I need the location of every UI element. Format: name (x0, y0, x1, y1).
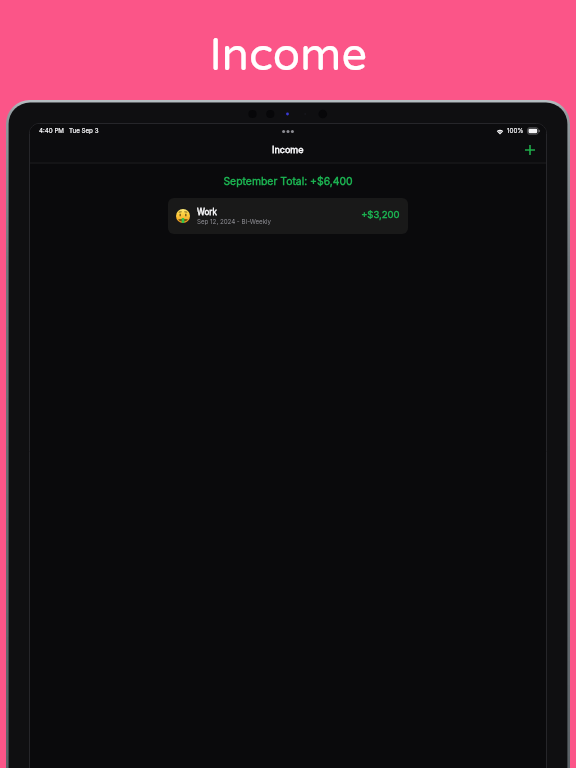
staticText: 100% (507, 127, 524, 135)
staticText: September Total: +$6,400 (30, 175, 546, 188)
button[interactable]: Work (168, 198, 408, 234)
staticText: Work (197, 207, 217, 217)
button[interactable]: Add income (518, 142, 542, 158)
staticText: Tue Sep 3 (69, 127, 99, 135)
staticText: Income (0, 29, 576, 83)
staticText: +$3,200 (361, 209, 400, 220)
staticText: Income (272, 144, 304, 155)
staticText: 4:40 PM (39, 127, 64, 135)
staticText: Sep 12, 2024 - Bi-Weekly (197, 218, 272, 226)
